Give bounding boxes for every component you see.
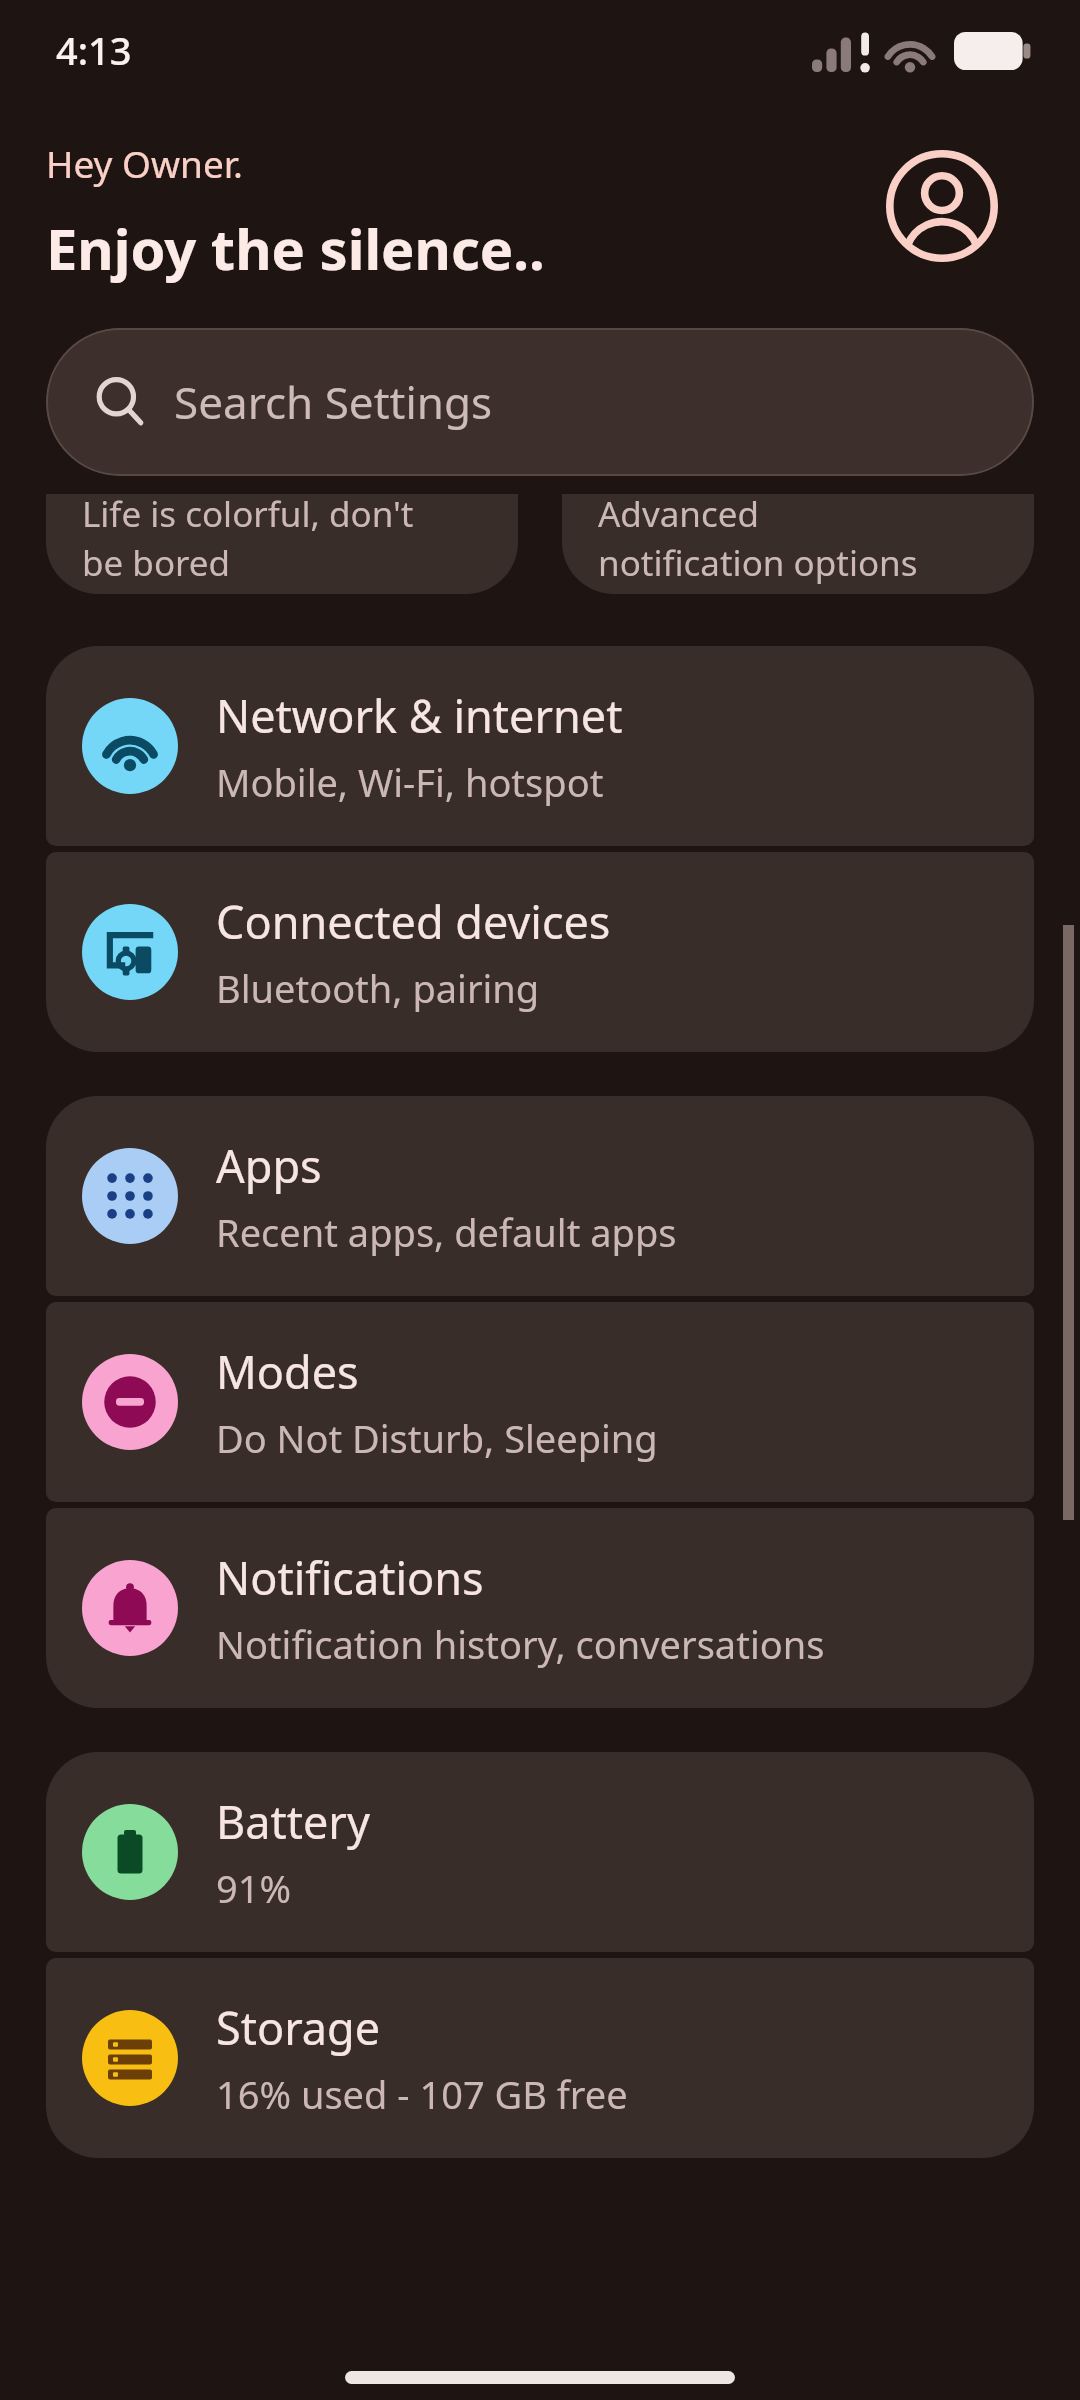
staticText: Hey Owner. bbox=[46, 138, 244, 188]
staticText: Life is colorful, don't be bored bbox=[82, 494, 414, 586]
button[interactable]: Network & internet bbox=[46, 646, 1034, 846]
button[interactable]: Life is colorful, don't be bored bbox=[46, 494, 518, 594]
staticText: 16% used - 107 GB free bbox=[216, 2068, 628, 2120]
staticText: Apps bbox=[216, 1135, 322, 1196]
staticText: Network & internet bbox=[216, 685, 623, 746]
button[interactable]: Apps bbox=[46, 1096, 1034, 1296]
button[interactable]: Account bbox=[880, 144, 1004, 268]
staticText: Search Settings bbox=[174, 372, 493, 432]
staticText: 4:13 bbox=[56, 24, 132, 76]
staticText: Mobile, Wi-Fi, hotspot bbox=[216, 756, 604, 808]
button[interactable]: Battery bbox=[46, 1752, 1034, 1952]
staticText: Notification history, conversations bbox=[216, 1618, 825, 1670]
staticText: Notifications bbox=[216, 1547, 484, 1608]
staticText: Do Not Disturb, Sleeping bbox=[216, 1412, 658, 1464]
button[interactable]: Search Settings bbox=[46, 328, 1034, 476]
staticText: 91% bbox=[216, 1862, 292, 1914]
button[interactable]: Notifications bbox=[46, 1508, 1034, 1708]
staticText: Advanced notification options bbox=[598, 494, 918, 586]
button[interactable]: Modes bbox=[46, 1302, 1034, 1502]
staticText: Enjoy the silence.. bbox=[46, 210, 545, 286]
button[interactable]: Storage bbox=[46, 1958, 1034, 2158]
staticText: Modes bbox=[216, 1341, 359, 1402]
staticText: Connected devices bbox=[216, 891, 611, 952]
staticText: Storage bbox=[216, 1997, 381, 2058]
staticText: Bluetooth, pairing bbox=[216, 962, 540, 1014]
button[interactable]: Connected devices bbox=[46, 852, 1034, 1052]
button[interactable]: Advanced notification options bbox=[562, 494, 1034, 594]
staticText: Battery bbox=[216, 1791, 370, 1852]
staticText: Recent apps, default apps bbox=[216, 1206, 677, 1258]
